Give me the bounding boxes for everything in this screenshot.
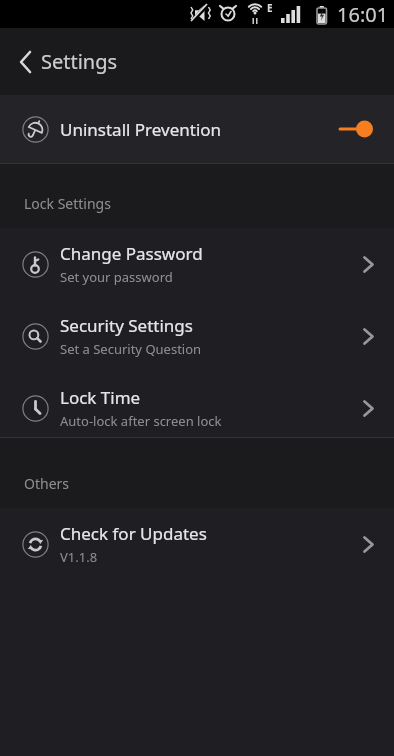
button[interactable]: Lock Time [0, 372, 394, 437]
staticText: V1.1.8 [60, 548, 98, 566]
staticText: Settings [41, 48, 118, 75]
staticText: Security Settings [60, 314, 193, 337]
button[interactable]: Settings [0, 28, 394, 95]
staticText: 16:01 [337, 1, 389, 28]
staticText: E [267, 1, 273, 15]
staticText: Others [24, 474, 70, 493]
staticText: Check for Updates [60, 522, 207, 545]
staticText: Set your password [60, 268, 173, 286]
staticText: Change Password [60, 242, 203, 265]
button[interactable]: Change Password [0, 228, 394, 300]
button[interactable]: Check for Updates [0, 508, 394, 580]
staticText: Lock Time [60, 386, 141, 409]
staticText: Uninstall Prevention [60, 118, 222, 141]
button[interactable]: Security Settings [0, 300, 394, 372]
staticText: Set a Security Question [60, 340, 202, 358]
staticText: Auto-lock after screen lock [60, 412, 222, 430]
button[interactable]: Uninstall Prevention [0, 95, 394, 163]
staticText: Lock Settings [24, 194, 111, 213]
